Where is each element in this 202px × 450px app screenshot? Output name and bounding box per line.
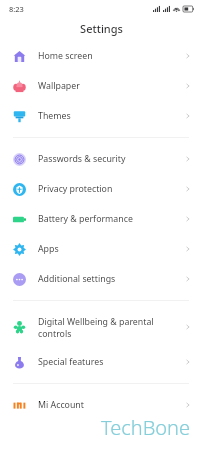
button[interactable]: Mi Account bbox=[0, 390, 202, 420]
staticText: Home screen bbox=[38, 50, 184, 62]
staticText: Passwords & security bbox=[38, 153, 184, 165]
button[interactable]: Wallpaper bbox=[0, 71, 202, 101]
button[interactable]: Home screen bbox=[0, 41, 202, 71]
staticText: TechBone bbox=[101, 414, 191, 441]
staticText: Digital Wellbeing & parental controls bbox=[38, 316, 184, 339]
staticText: Special features bbox=[38, 356, 184, 368]
button[interactable]: Apps bbox=[0, 234, 202, 264]
staticText: Battery & performance bbox=[38, 213, 184, 225]
staticText: Mi Account bbox=[38, 399, 184, 411]
staticText: Additional settings bbox=[38, 273, 184, 285]
button[interactable]: Digital Wellbeing & parental controls bbox=[0, 307, 202, 347]
staticText: 8:23 bbox=[9, 4, 24, 14]
button[interactable]: Passwords & security bbox=[0, 144, 202, 174]
button[interactable]: Privacy protection bbox=[0, 174, 202, 204]
staticText: Settings bbox=[80, 21, 123, 36]
staticText: Wallpaper bbox=[38, 80, 184, 92]
staticText: Themes bbox=[38, 110, 184, 122]
staticText: Privacy protection bbox=[38, 183, 184, 195]
button[interactable]: Special features bbox=[0, 347, 202, 377]
staticText: Apps bbox=[38, 243, 184, 255]
button[interactable]: Additional settings bbox=[0, 264, 202, 294]
button[interactable]: Themes bbox=[0, 101, 202, 131]
button[interactable]: Battery & performance bbox=[0, 204, 202, 234]
